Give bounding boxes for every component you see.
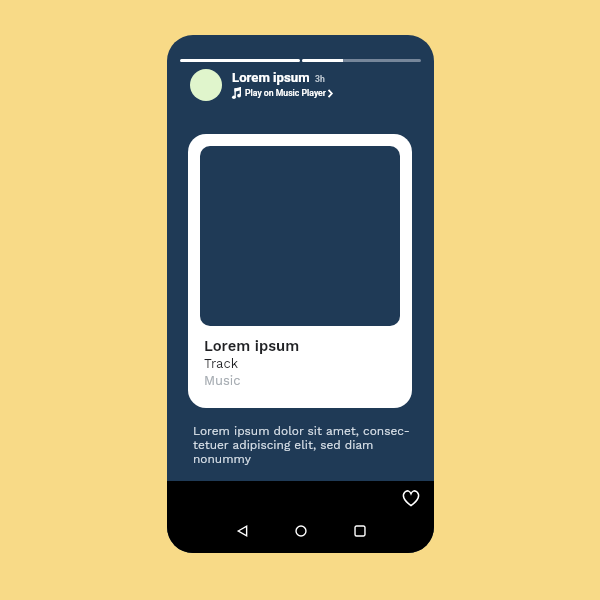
button[interactable]: Recents <box>348 519 372 543</box>
staticText: 3h <box>315 74 325 84</box>
button[interactable]: Lorem ipsum <box>188 134 412 408</box>
button[interactable]: Like <box>399 486 423 510</box>
button[interactable]: Home <box>289 519 313 543</box>
staticText: Lorem ipsum <box>204 337 300 354</box>
staticText: Lorem ipsum dolor sit amet, consec- tetu… <box>193 424 423 466</box>
button[interactable]: Play on Music Player <box>232 87 333 99</box>
staticText: Track <box>204 356 239 371</box>
staticText: Play on Music Player <box>245 88 326 98</box>
staticText: Music <box>204 373 241 388</box>
button[interactable]: Back <box>231 519 255 543</box>
staticText: Lorem ipsum <box>232 70 310 85</box>
